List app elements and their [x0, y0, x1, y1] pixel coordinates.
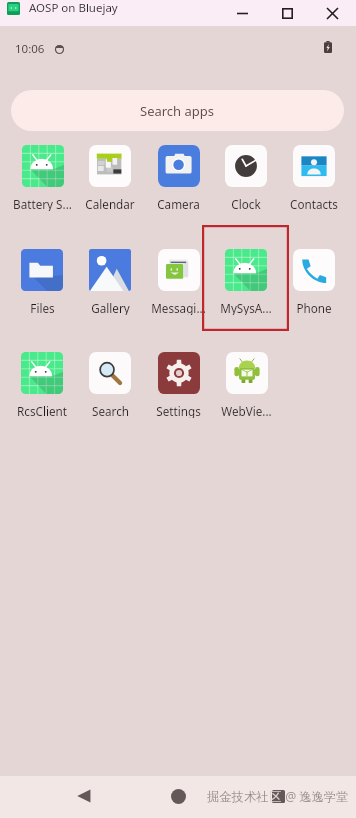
button[interactable]: Settings	[144, 348, 212, 418]
button[interactable]: Search apps	[11, 90, 344, 131]
staticText: @ 逸逸学堂	[282, 788, 349, 805]
staticText: Contacts	[290, 196, 338, 211]
button[interactable]: Calendar	[76, 141, 144, 211]
button[interactable]: Back	[70, 782, 98, 810]
staticText: Search	[92, 403, 129, 418]
staticText: Clock	[231, 196, 261, 211]
button[interactable]: Contacts	[280, 141, 348, 211]
button[interactable]: Messagi...	[144, 245, 212, 315]
button[interactable]: Phone	[280, 245, 348, 315]
staticText: Files	[30, 300, 55, 315]
button[interactable]: Maximize	[265, 0, 310, 26]
button[interactable]: Clock	[212, 141, 280, 211]
staticText: MySysA...	[220, 300, 272, 315]
staticText: RcsClient	[17, 403, 67, 418]
button[interactable]: RcsClient	[8, 348, 76, 418]
button[interactable]: Search	[76, 348, 144, 418]
staticText: Camera	[157, 196, 200, 211]
staticText: Settings	[156, 403, 201, 418]
button[interactable]: Close	[310, 0, 355, 26]
staticText: Battery S...	[13, 196, 72, 211]
button[interactable]: Recents	[265, 783, 291, 809]
staticText: Phone	[296, 300, 332, 315]
staticText: AOSP on Bluejay	[29, 0, 118, 16]
staticText: Search apps	[140, 102, 215, 120]
button[interactable]: Home	[164, 782, 192, 810]
button[interactable]: Camera	[144, 141, 212, 211]
button[interactable]: WebVie...	[212, 348, 280, 418]
staticText: 掘金技术社	[207, 789, 269, 804]
staticText: Calendar	[85, 196, 135, 211]
button[interactable]: Files	[8, 245, 76, 315]
staticText: Messagi...	[151, 300, 206, 315]
staticText: WebVie...	[221, 403, 272, 418]
button[interactable]: MySysA...	[212, 245, 280, 315]
button[interactable]: Battery S...	[8, 141, 76, 211]
button[interactable]: Minimize	[220, 0, 265, 26]
button[interactable]: Gallery	[76, 245, 144, 315]
staticText: 10:06	[15, 41, 45, 57]
staticText: Gallery	[91, 300, 130, 315]
staticText: 区	[269, 789, 282, 804]
